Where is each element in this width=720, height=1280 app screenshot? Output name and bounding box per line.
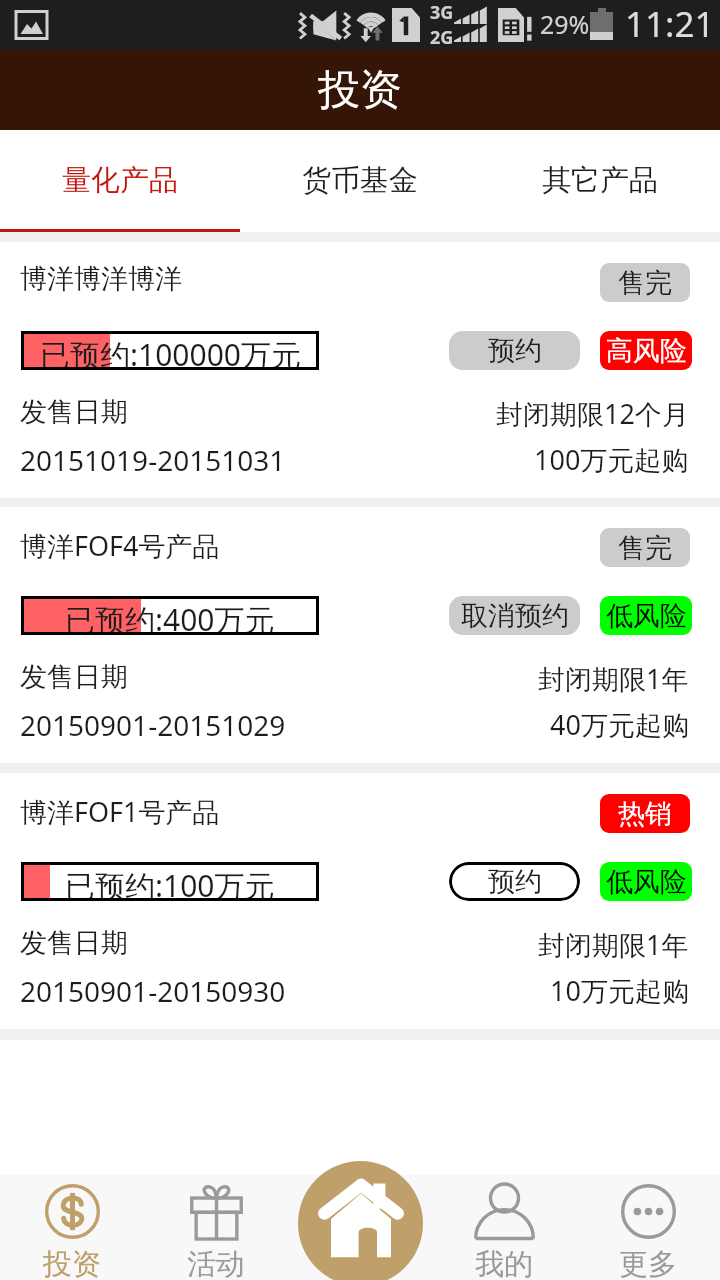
- button[interactable]: 其它产品: [480, 130, 720, 229]
- staticText: 发售日期: [20, 660, 128, 694]
- button[interactable]: 售完: [600, 263, 690, 302]
- staticText: 低风险: [606, 865, 687, 899]
- staticText: 投资: [43, 1246, 101, 1280]
- staticText: 售完: [618, 266, 672, 300]
- button[interactable]: 取消预约: [449, 596, 580, 635]
- staticText: 货币基金: [302, 162, 418, 199]
- button[interactable]: 售完: [600, 528, 690, 567]
- button[interactable]: 更多: [576, 1175, 720, 1280]
- button[interactable]: 货币基金: [240, 130, 480, 229]
- staticText: 3G: [430, 0, 454, 25]
- staticText: 我的: [475, 1246, 533, 1280]
- button[interactable]: 首页: [298, 1161, 423, 1280]
- staticText: 投资: [318, 64, 402, 117]
- staticText: 10万元起购: [550, 972, 689, 1009]
- button[interactable]: 低风险: [600, 596, 692, 635]
- staticText: 20150901-20151029: [20, 706, 286, 744]
- staticText: 取消预约: [461, 599, 569, 633]
- staticText: 预约: [488, 865, 542, 899]
- button[interactable]: 博洋FOF1号产品: [0, 773, 720, 1029]
- staticText: 封闭期限12个月: [496, 395, 689, 432]
- staticText: 2G: [430, 25, 454, 50]
- staticText: 活动: [187, 1246, 245, 1280]
- staticText: 已预约:100000万元: [40, 334, 301, 367]
- staticText: 封闭期限1年: [538, 660, 689, 697]
- staticText: 100万元起购: [534, 441, 689, 478]
- button[interactable]: 量化产品: [0, 130, 240, 229]
- staticText: 20150901-20150930: [20, 972, 286, 1010]
- staticText: 已预约:100万元: [65, 865, 275, 898]
- staticText: 发售日期: [20, 395, 128, 429]
- button[interactable]: 我的: [432, 1175, 576, 1280]
- staticText: 售完: [618, 531, 672, 565]
- staticText: 11:21: [625, 0, 715, 48]
- button[interactable]: 高风险: [600, 331, 692, 370]
- button[interactable]: 博洋博洋博洋: [0, 242, 720, 498]
- button[interactable]: 低风险: [600, 862, 692, 901]
- button[interactable]: 热销: [600, 794, 690, 833]
- staticText: 博洋博洋博洋: [20, 262, 182, 296]
- staticText: 博洋FOF1号产品: [20, 793, 220, 830]
- button[interactable]: 投资: [0, 1175, 144, 1280]
- staticText: 已预约:400万元: [65, 599, 275, 632]
- staticText: 更多: [619, 1246, 677, 1280]
- staticText: 29%: [540, 7, 590, 41]
- button[interactable]: 预约: [449, 331, 580, 370]
- button[interactable]: 活动: [144, 1175, 288, 1280]
- staticText: 高风险: [606, 334, 687, 368]
- staticText: 20151019-20151031: [20, 441, 286, 479]
- button[interactable]: 博洋FOF4号产品: [0, 507, 720, 763]
- staticText: 发售日期: [20, 926, 128, 960]
- staticText: 量化产品: [62, 162, 178, 199]
- staticText: 40万元起购: [550, 706, 689, 743]
- staticText: 预约: [488, 334, 542, 368]
- staticText: 封闭期限1年: [538, 926, 689, 963]
- button[interactable]: 预约: [449, 862, 580, 901]
- staticText: 博洋FOF4号产品: [20, 527, 220, 564]
- staticText: 低风险: [606, 599, 687, 633]
- staticText: 其它产品: [542, 162, 658, 199]
- staticText: 热销: [618, 797, 672, 831]
